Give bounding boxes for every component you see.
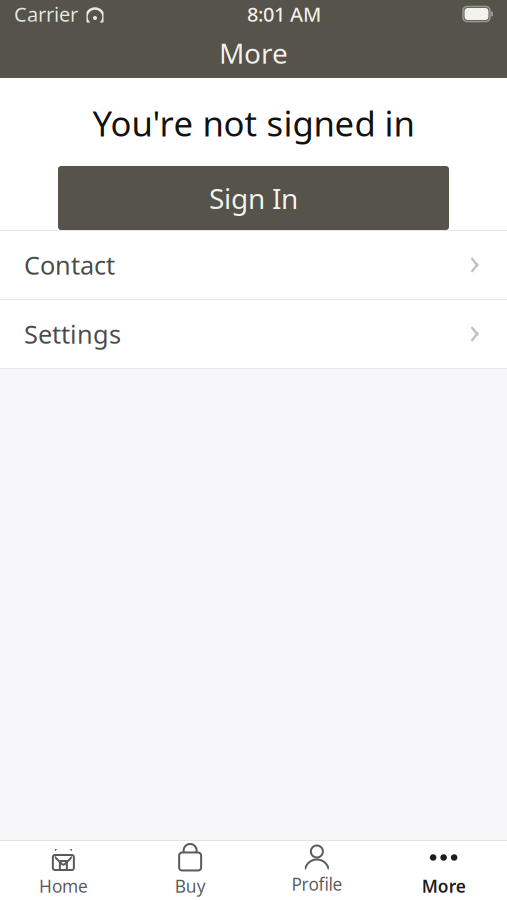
button[interactable]: Settings: [0, 300, 507, 368]
staticText: Carrier: [14, 1, 78, 27]
staticText: Contact: [24, 248, 115, 282]
button[interactable]: More: [380, 841, 507, 899]
button[interactable]: Home: [0, 841, 127, 899]
staticText: 8:01 AM: [247, 1, 321, 27]
button[interactable]: Contact: [0, 231, 507, 299]
staticText: More: [422, 874, 466, 897]
button[interactable]: Sign In: [58, 166, 449, 230]
staticText: Settings: [24, 317, 121, 351]
button[interactable]: Profile: [253, 841, 380, 899]
staticText: Home: [39, 874, 88, 897]
staticText: Buy: [175, 874, 206, 897]
staticText: You're not signed in: [92, 100, 414, 146]
staticText: Profile: [291, 872, 342, 895]
staticText: More: [219, 34, 288, 72]
staticText: Sign In: [209, 179, 298, 217]
button[interactable]: Buy: [127, 841, 254, 899]
